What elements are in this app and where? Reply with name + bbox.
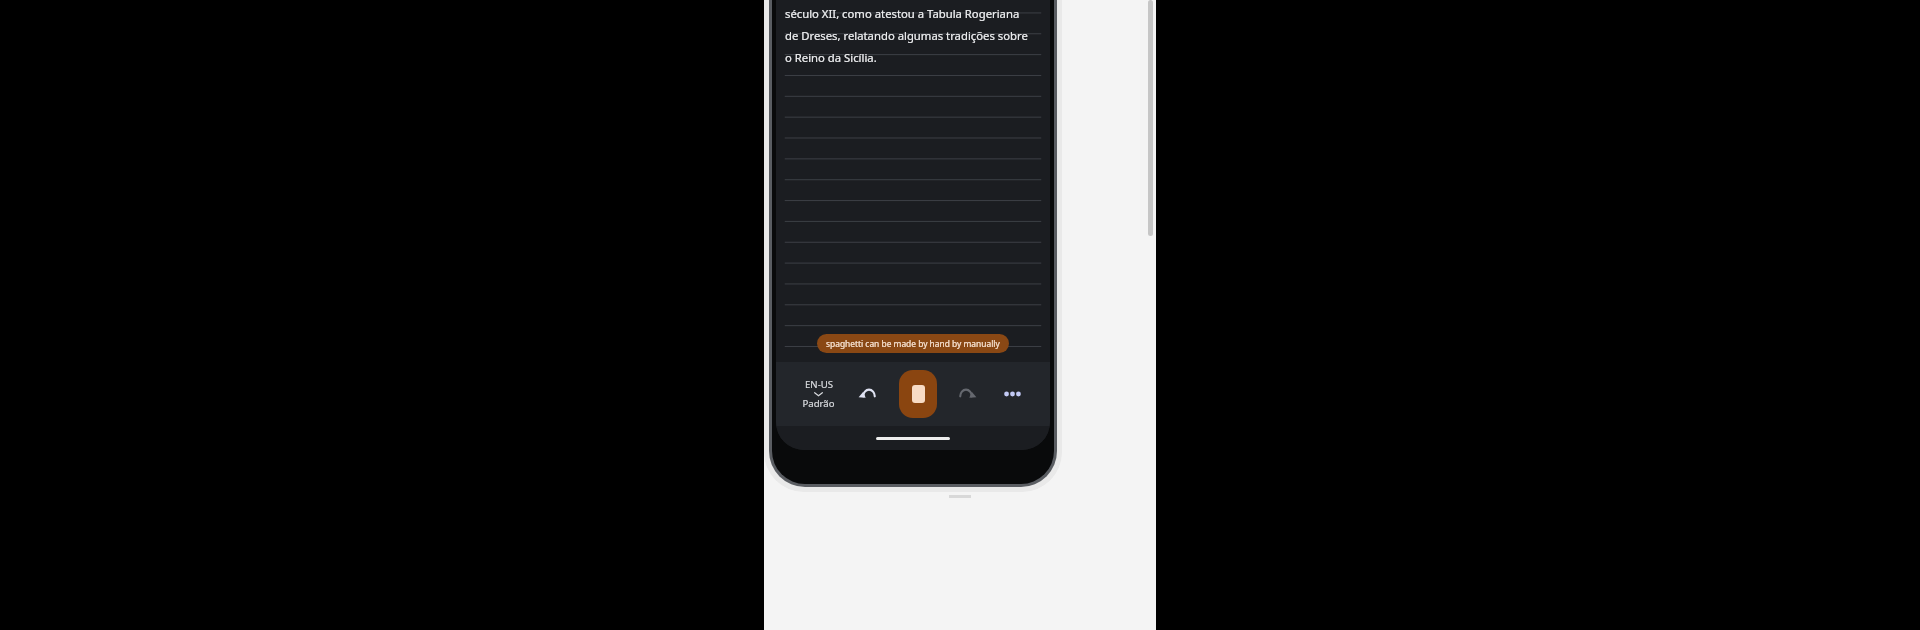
staticText: Padrão <box>802 397 835 410</box>
button[interactable]: More options <box>996 378 1028 410</box>
staticText: século XII, como atestou a Tabula Rogeri… <box>785 6 1020 21</box>
staticText: EN-US <box>805 378 833 391</box>
button[interactable]: EN-US <box>798 376 839 412</box>
button[interactable]: Undo <box>853 378 885 410</box>
button[interactable]: Redo <box>950 378 982 410</box>
button[interactable]: século XII, como atestou a Tabula Rogeri… <box>785 0 1041 68</box>
button[interactable]: Stop <box>899 370 937 418</box>
button[interactable]: spaghetti can be made by hand by manuall… <box>817 334 1009 353</box>
staticText: de Dreses, relatando algumas tradições s… <box>785 28 1028 43</box>
staticText: spaghetti can be made by hand by manuall… <box>826 338 1000 349</box>
staticText: o Reino da Sicília. <box>785 50 877 65</box>
